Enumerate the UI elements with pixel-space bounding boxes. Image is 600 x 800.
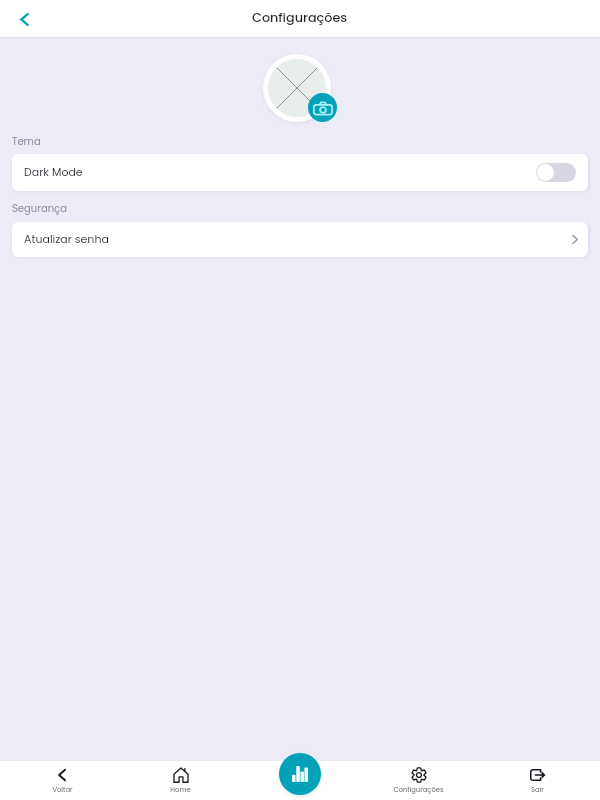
- staticText: Tema: [12, 134, 41, 148]
- button[interactable]: Voltar: [9, 4, 39, 34]
- staticText: Configurações: [252, 9, 348, 27]
- staticText: Sair: [531, 785, 544, 795]
- button[interactable]: Configurações: [359, 761, 478, 800]
- staticText: Dark Mode: [24, 164, 83, 179]
- button[interactable]: Voltar: [3, 761, 121, 800]
- button[interactable]: Estatísticas: [279, 753, 321, 795]
- staticText: Segurança: [12, 201, 67, 215]
- button[interactable]: Home: [121, 761, 240, 800]
- staticText: Voltar: [52, 785, 73, 795]
- button[interactable]: Dark Mode: [12, 154, 588, 191]
- button[interactable]: Alterar foto de perfil: [308, 93, 337, 122]
- button[interactable]: Alternar modo escuro: [536, 163, 576, 182]
- button[interactable]: Atualizar senha: [12, 222, 588, 257]
- button[interactable]: Sair: [478, 761, 597, 800]
- button[interactable]: Foto de perfil: [268, 59, 326, 117]
- staticText: Configurações: [393, 785, 444, 795]
- staticText: Atualizar senha: [24, 231, 109, 246]
- staticText: Home: [170, 785, 191, 795]
